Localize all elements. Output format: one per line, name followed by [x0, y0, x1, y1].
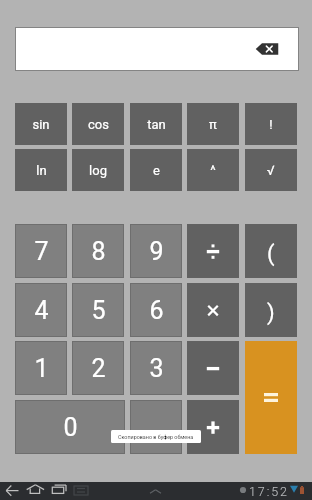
staticText: 4: [34, 296, 49, 325]
staticText: !: [269, 117, 273, 132]
staticText: 17:52: [249, 484, 289, 499]
button[interactable]: .: [131, 401, 181, 453]
staticText: (: [267, 241, 275, 267]
button[interactable]: !: [246, 104, 296, 144]
button[interactable]: 1: [16, 342, 66, 394]
button[interactable]: log: [73, 150, 123, 190]
button[interactable]: Home: [24, 482, 46, 500]
staticText: 1: [34, 354, 49, 383]
button[interactable]: 0: [16, 401, 124, 453]
button[interactable]: 8: [73, 225, 123, 277]
button[interactable]: Multiply: [187, 283, 239, 337]
staticText: ^: [210, 163, 216, 178]
staticText: 5: [91, 296, 106, 325]
button[interactable]: Backspace: [16, 28, 298, 70]
button[interactable]: 3: [131, 342, 181, 394]
staticText: cos: [88, 117, 109, 132]
button[interactable]: Recent apps: [49, 482, 71, 500]
staticText: 6: [149, 296, 164, 325]
staticText: π: [209, 117, 217, 132]
button[interactable]: Divide: [187, 224, 239, 278]
staticText: 7: [34, 237, 49, 266]
button[interactable]: Backspace: [252, 36, 282, 61]
staticText: ): [267, 300, 275, 326]
staticText: ln: [36, 163, 47, 178]
staticText: sin: [32, 117, 50, 132]
button[interactable]: sin: [16, 104, 66, 144]
staticText: 8: [91, 237, 106, 266]
button[interactable]: 7: [16, 225, 66, 277]
staticText: Скопировано в буфер обмена: [118, 434, 194, 440]
button[interactable]: ): [245, 283, 297, 337]
button[interactable]: ln: [16, 150, 66, 190]
button[interactable]: cos: [73, 104, 123, 144]
staticText: 9: [149, 237, 164, 266]
button[interactable]: ^: [188, 150, 238, 190]
staticText: log: [89, 163, 107, 178]
staticText: tan: [147, 117, 166, 132]
staticText: e: [153, 163, 160, 178]
button[interactable]: 2: [73, 342, 123, 394]
button[interactable]: √: [246, 150, 296, 190]
button[interactable]: Back: [1, 482, 23, 500]
button[interactable]: 5: [73, 284, 123, 336]
button[interactable]: 6: [131, 284, 181, 336]
button[interactable]: 9: [131, 225, 181, 277]
staticText: .: [153, 413, 160, 442]
staticText: 3: [149, 354, 164, 383]
button[interactable]: Equals: [245, 341, 297, 454]
button[interactable]: (: [245, 224, 297, 278]
staticText: √: [267, 163, 275, 178]
button[interactable]: π: [188, 104, 238, 144]
button[interactable]: 4: [16, 284, 66, 336]
staticText: 0: [63, 413, 78, 442]
staticText: 2: [91, 354, 106, 383]
button[interactable]: Add: [187, 400, 239, 454]
button[interactable]: tan: [131, 104, 181, 144]
button[interactable]: Subtract: [187, 341, 239, 395]
button[interactable]: e: [131, 150, 181, 190]
